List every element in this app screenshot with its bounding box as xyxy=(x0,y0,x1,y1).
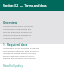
staticText: Section 3.2 — Terms and docs xyxy=(3,4,47,8)
button[interactable]: Read full policy xyxy=(0,64,23,68)
staticText: signed declaration of accuracy. xyxy=(3,57,37,60)
staticText: three calendar months and a xyxy=(3,55,35,58)
staticText: residence dated within the last xyxy=(3,52,37,55)
staticText: Ut enim ad minim. xyxy=(3,37,23,40)
button[interactable]: Section 3.2 — Terms and docs xyxy=(0,0,64,11)
staticText: consectetur adipiscing elit, xyxy=(3,28,32,31)
button[interactable]: 1. Required docs xyxy=(0,43,28,47)
staticText: document together with proof of xyxy=(3,50,39,53)
staticText: Overview xyxy=(3,21,18,25)
staticText: labore et dolore magna al. xyxy=(3,34,32,37)
staticText: sed do eiusmod tempor ut xyxy=(3,31,32,34)
staticText: Read full policy xyxy=(3,64,23,68)
staticText: 1. Required docs xyxy=(3,43,28,47)
staticText: Applicants must provide a valid id xyxy=(3,47,40,50)
staticText: Lorem ipsum dolor sit amet, xyxy=(3,25,34,28)
